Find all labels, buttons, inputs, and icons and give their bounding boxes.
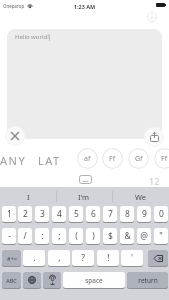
button[interactable]: /: [18, 228, 32, 244]
staticText: .: [33, 252, 36, 264]
button[interactable]: 9: [137, 206, 151, 222]
staticText: I: [27, 192, 30, 202]
staticText: 1:23 AM: [0, 3, 169, 10]
staticText: 1: [7, 208, 12, 220]
button[interactable]: ?: [72, 250, 94, 266]
staticText: 7: [108, 208, 113, 220]
staticText: 2: [23, 208, 28, 220]
button[interactable]: 7: [103, 206, 117, 222]
staticText: Hello world!: [15, 33, 49, 41]
button[interactable]: $: [103, 228, 117, 244]
button[interactable]: space: [63, 272, 125, 288]
staticText: (: [75, 230, 78, 242]
button[interactable]: ANY: [0, 153, 27, 168]
button[interactable]: af: [77, 148, 98, 169]
button[interactable]: 1: [2, 206, 16, 222]
button[interactable]: !: [97, 250, 119, 266]
button[interactable]: :: [35, 228, 49, 244]
button[interactable]: #+=: [2, 250, 21, 266]
button[interactable]: 2: [18, 206, 32, 222]
button[interactable]: @: [137, 228, 151, 244]
button[interactable]: 5: [69, 206, 83, 222]
button[interactable]: &: [120, 228, 134, 244]
button[interactable]: 6: [86, 206, 100, 222]
staticText: Оператор: [3, 3, 25, 9]
button[interactable]: 3: [35, 206, 49, 222]
button[interactable]: [144, 127, 164, 147]
staticText: 5: [74, 208, 79, 220]
button[interactable]: [5, 126, 25, 146]
staticText: Ff: [109, 154, 116, 164]
button[interactable]: [43, 272, 61, 288]
staticText: af: [84, 154, 91, 164]
staticText: I'm: [78, 192, 90, 202]
staticText: $: [108, 230, 113, 242]
staticText: :: [41, 230, 44, 242]
staticText: ABC: [6, 277, 17, 284]
button[interactable]: We: [113, 187, 169, 206]
staticText: return: [138, 276, 158, 285]
staticText: #+=: [7, 255, 17, 262]
staticText: 3: [40, 208, 45, 220]
button[interactable]: 8: [120, 206, 134, 222]
button[interactable]: ABC: [2, 272, 21, 288]
button[interactable]: [7, 29, 162, 139]
staticText: space: [85, 276, 103, 285]
button[interactable]: [79, 175, 92, 184]
staticText: ': [131, 252, 133, 264]
button[interactable]: -: [2, 228, 16, 244]
button[interactable]: [148, 250, 168, 266]
button[interactable]: Ff: [154, 148, 169, 169]
button[interactable]: (: [69, 228, 83, 244]
button[interactable]: 0: [154, 206, 168, 222]
staticText: Gf: [135, 154, 143, 164]
button[interactable]: [23, 272, 41, 288]
button[interactable]: I'm: [56, 187, 112, 206]
button[interactable]: ': [121, 250, 143, 266]
staticText: We: [135, 192, 147, 202]
button[interactable]: ): [86, 228, 100, 244]
button[interactable]: I: [0, 187, 56, 206]
button[interactable]: return: [127, 272, 168, 288]
button[interactable]: Gf: [128, 148, 149, 169]
staticText: &: [124, 230, 131, 242]
staticText: @: [140, 230, 148, 242]
staticText: 6: [91, 208, 96, 220]
staticText: !: [107, 252, 110, 264]
staticText: ": [159, 230, 163, 242]
button[interactable]: ;: [52, 228, 66, 244]
staticText: -: [8, 230, 11, 242]
staticText: ): [92, 230, 95, 242]
button[interactable]: Ff: [102, 148, 123, 169]
staticText: ,: [58, 252, 61, 264]
staticText: ?: [81, 252, 85, 264]
staticText: 4: [57, 208, 62, 220]
staticText: 12: [149, 175, 160, 187]
button[interactable]: ,: [48, 250, 70, 266]
staticText: Ff: [161, 154, 168, 164]
staticText: /: [23, 230, 27, 242]
staticText: ;: [58, 230, 61, 242]
button[interactable]: ": [154, 228, 168, 244]
staticText: 0: [159, 208, 164, 220]
staticText: 8: [125, 208, 130, 220]
button[interactable]: 4: [52, 206, 66, 222]
button[interactable]: .: [23, 250, 45, 266]
button[interactable]: LAT: [38, 153, 61, 168]
staticText: 9: [142, 208, 147, 220]
